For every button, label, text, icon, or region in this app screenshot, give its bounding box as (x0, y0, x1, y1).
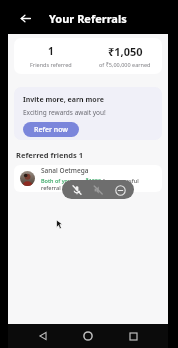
staticText: Friends referred (30, 61, 72, 68)
staticText: ₹1,050 (108, 44, 143, 59)
staticText: Invite more, earn more (23, 95, 104, 105)
button[interactable]: Back (33, 326, 53, 346)
button[interactable]: Sound off (91, 183, 105, 197)
button[interactable]: Microphone off (70, 183, 84, 197)
staticText: Referred friends 1 (16, 150, 84, 160)
button[interactable]: Recent apps (123, 326, 143, 346)
button[interactable]: Back (14, 7, 36, 29)
button[interactable]: 1 (14, 38, 162, 74)
button[interactable]: Home (78, 326, 98, 346)
staticText: 1 (48, 44, 54, 58)
button[interactable]: Refer now (23, 122, 79, 137)
staticText: Refer now (34, 125, 68, 135)
button[interactable]: Sanal Oetmega (14, 165, 162, 192)
staticText: Both of you won ₹1050 for successful ref… (41, 177, 156, 191)
staticText: Sanal Oetmega (41, 166, 89, 175)
staticText: Your Referrals (49, 11, 127, 26)
staticText: of ₹5,00,000 earned (99, 61, 151, 68)
button[interactable]: Stop (113, 183, 127, 197)
staticText: Exciting rewards await you! (23, 108, 106, 117)
